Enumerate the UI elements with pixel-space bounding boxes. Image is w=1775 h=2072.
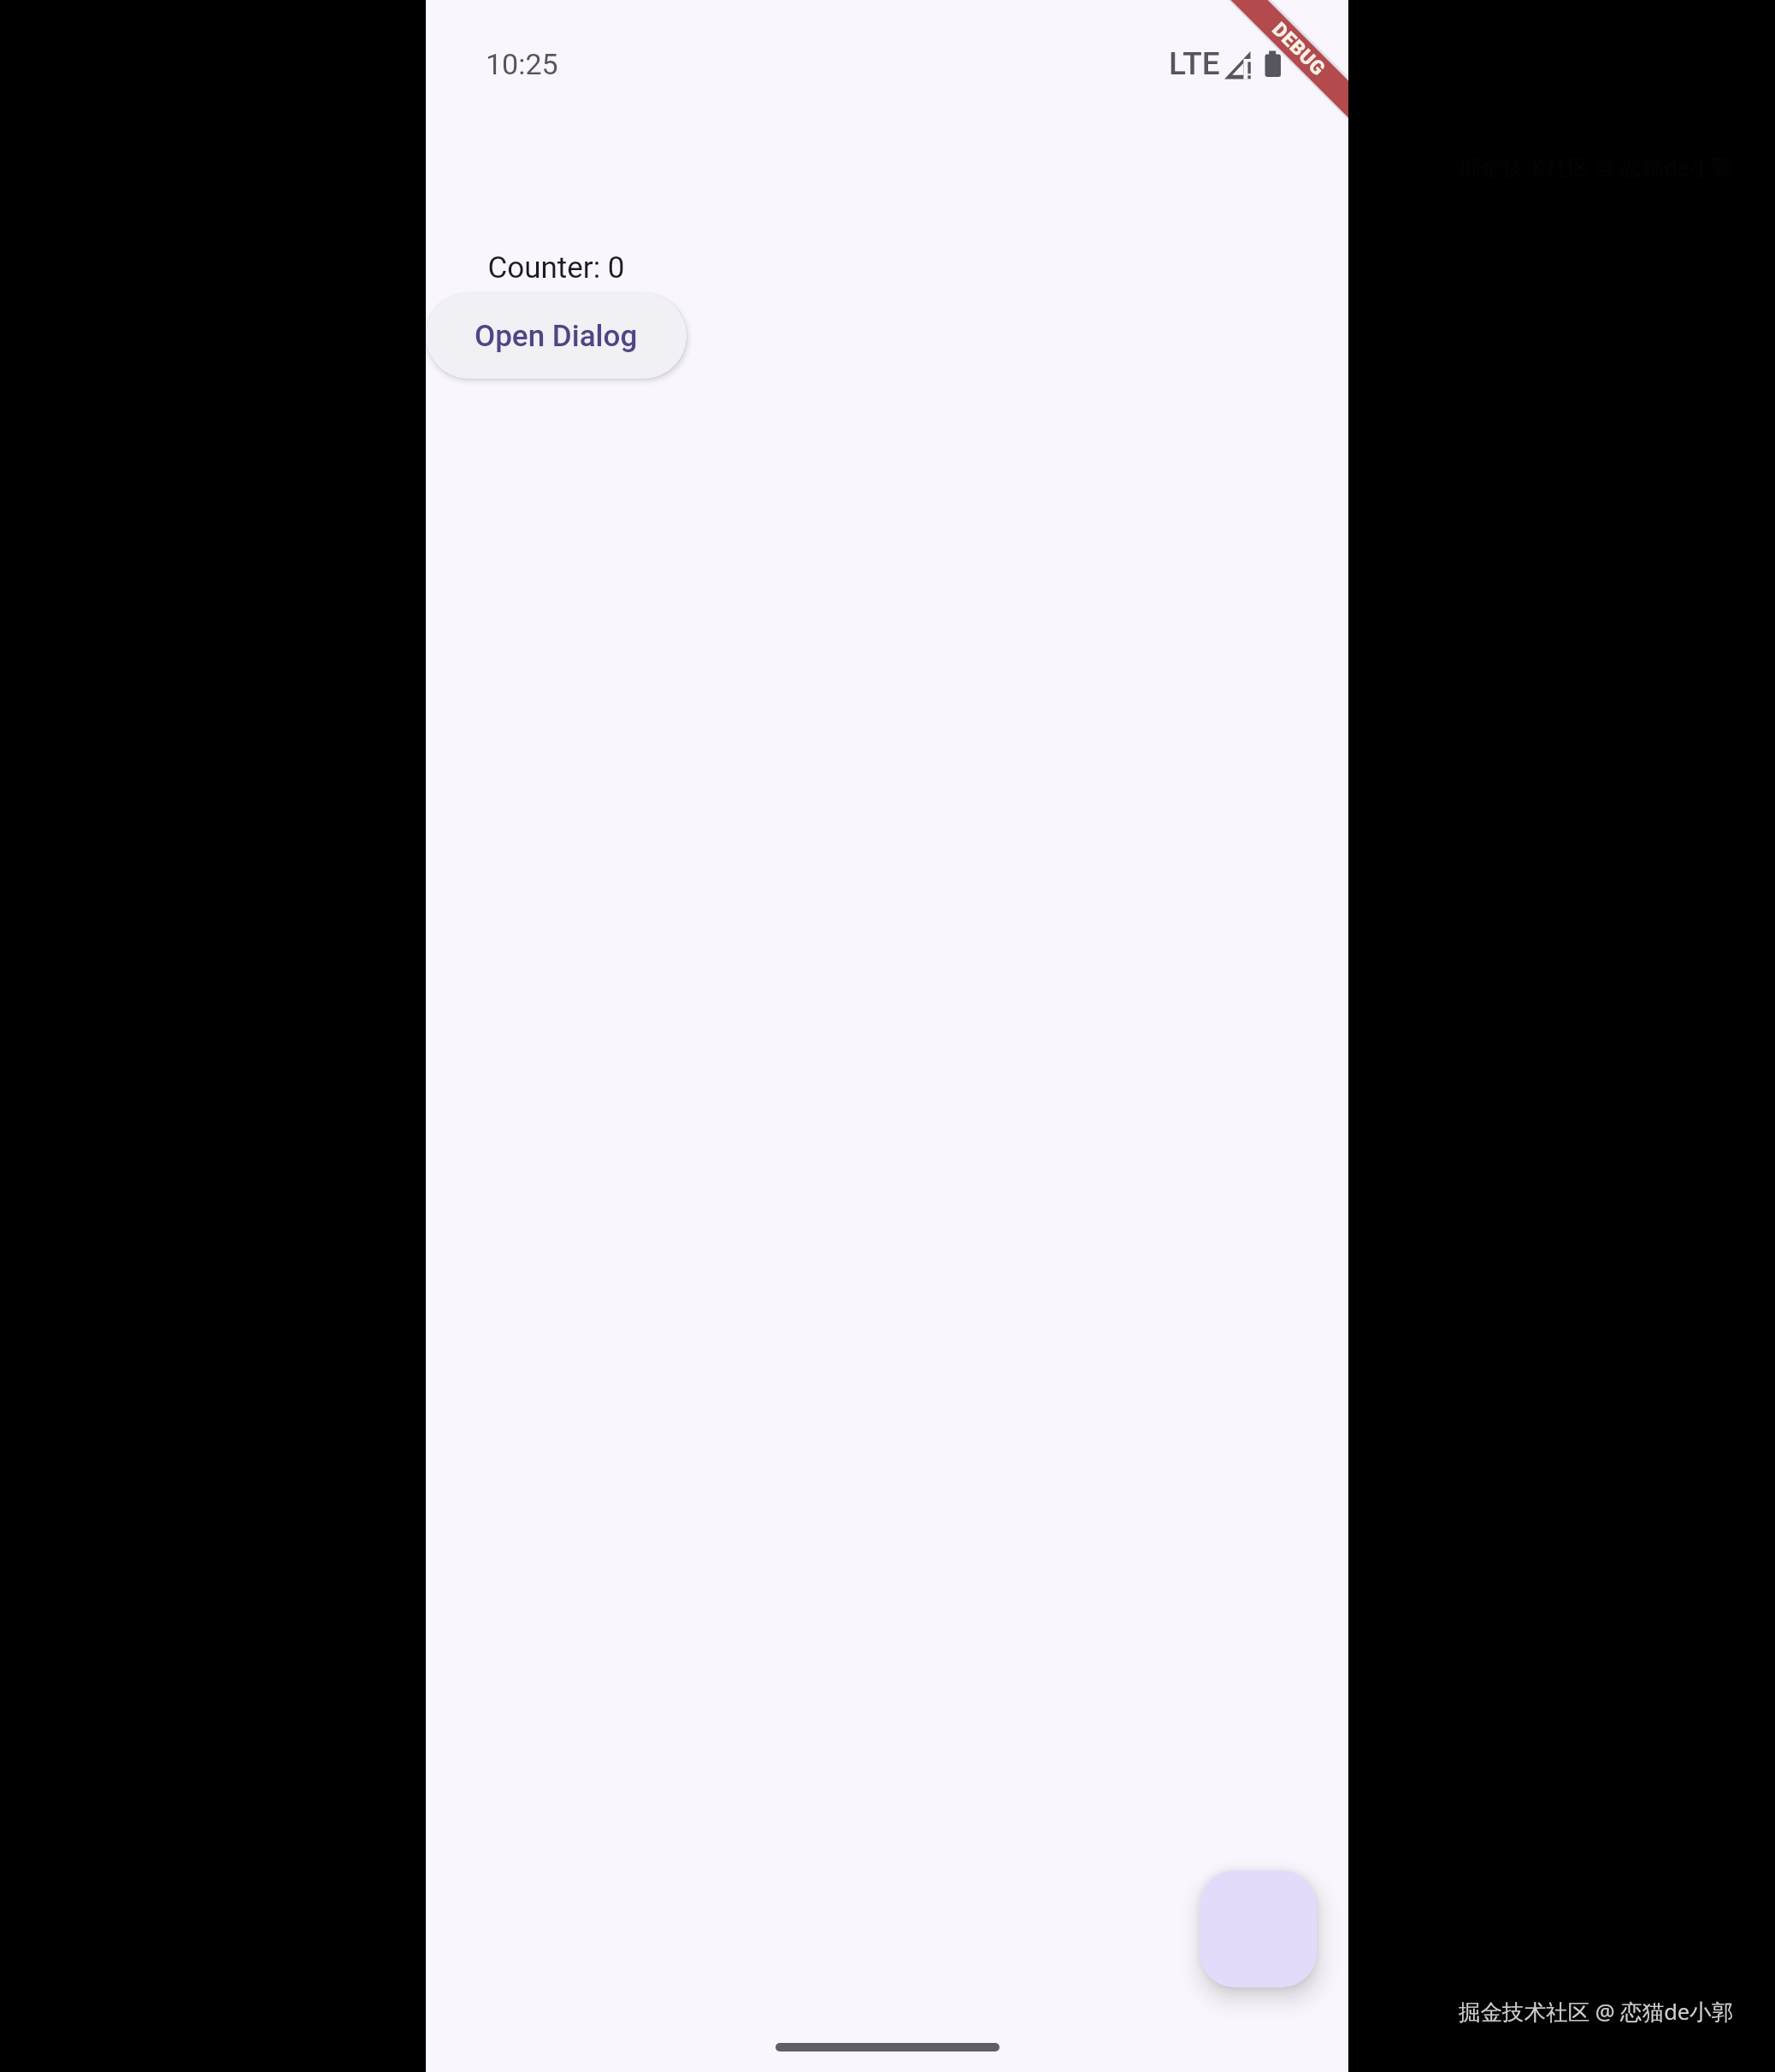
staticText: DEBUG	[1267, 18, 1330, 81]
staticText: LTE	[1169, 45, 1220, 82]
button[interactable]: Add	[1200, 1870, 1317, 1987]
staticText: 掘金技术社区 @ 恋猫de小郭	[1459, 1997, 1734, 2027]
staticText: Counter: 0	[487, 250, 625, 285]
staticText: Open Dialog	[475, 319, 638, 354]
button[interactable]: Open Dialog	[426, 293, 687, 379]
staticText: 10:25	[486, 47, 558, 81]
